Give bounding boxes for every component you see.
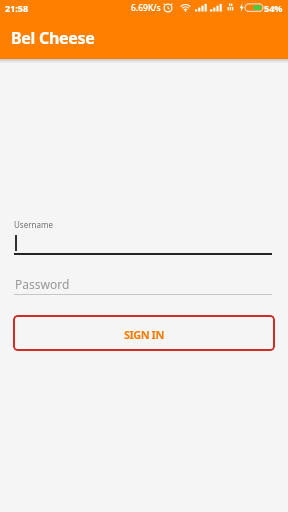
staticText: 54% [264, 2, 283, 14]
button[interactable] [14, 230, 272, 255]
staticText: Username [14, 219, 53, 230]
staticText: Bel Cheese [11, 27, 95, 49]
staticText: Password [15, 276, 70, 292]
staticText: 6.69K/s [131, 2, 161, 14]
button[interactable] [14, 271, 272, 296]
staticText: 21:58 [5, 2, 29, 14]
staticText: SIGN IN [124, 327, 164, 342]
button[interactable]: SIGN IN [13, 315, 275, 351]
